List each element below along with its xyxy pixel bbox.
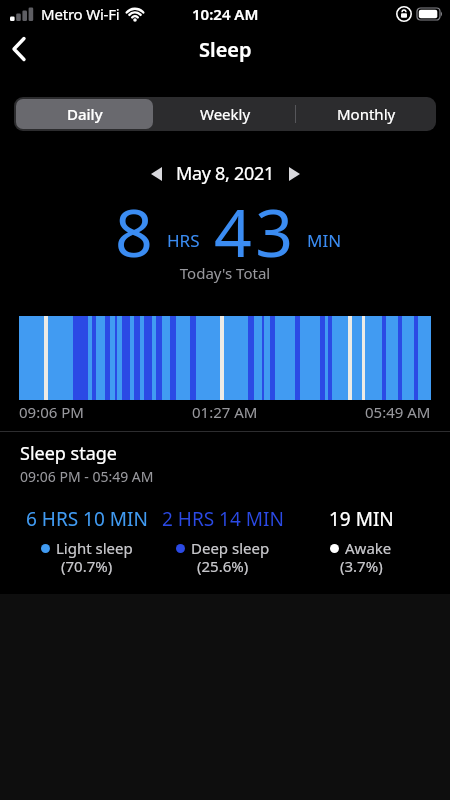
button[interactable] [144,162,168,186]
button[interactable]: Daily [16,99,153,129]
staticText: 19 MIN [329,506,394,532]
staticText: 6 HRS 10 MIN [26,506,148,532]
staticText: HRS [167,229,200,252]
staticText: Sleep [199,36,252,63]
staticText: 05:49 AM [365,402,431,422]
staticText: 43 [214,186,297,276]
staticText: MIN [307,229,342,252]
staticText: Metro Wi-Fi [41,4,120,24]
staticText: May 8, 2021 [176,161,274,186]
staticText: Light sleep [56,538,133,558]
staticText: (25.6%) [197,556,249,576]
staticText: Monthly [337,104,396,124]
staticText: Weekly [200,104,251,124]
button[interactable]: Monthly [296,97,436,131]
staticText: 8 [115,186,157,276]
staticText: 01:27 AM [192,402,258,422]
staticText: Deep sleep [191,538,270,558]
button[interactable] [282,162,306,186]
staticText: 09:06 PM - 05:49 AM [20,467,154,486]
staticText: (70.7%) [61,556,113,576]
staticText: Daily [67,104,103,124]
staticText: 2 HRS 14 MIN [162,506,284,532]
staticText: Sleep stage [20,441,118,466]
staticText: 09:06 PM [19,402,84,422]
staticText: (3.7%) [340,556,383,576]
button[interactable]: Weekly [155,97,295,131]
button[interactable] [3,33,35,65]
staticText: Awake [345,538,392,558]
staticText: 10:24 AM [192,4,259,24]
staticText: Today's Total [0,263,450,283]
